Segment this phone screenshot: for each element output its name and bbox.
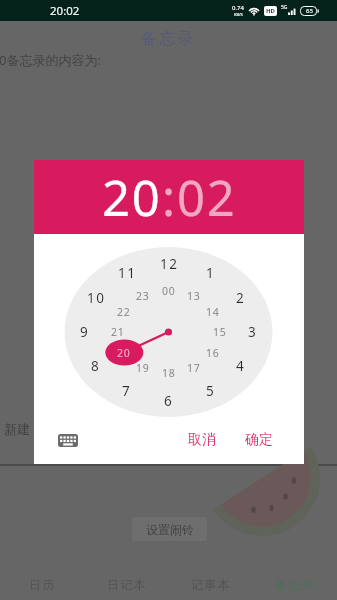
button[interactable]: 13 [180, 286, 208, 306]
staticText: 18 [162, 366, 176, 380]
button[interactable]: 16 [199, 343, 227, 363]
staticText: 5G [281, 4, 288, 11]
staticText: 3 [248, 323, 258, 341]
button[interactable]: 17 [180, 358, 208, 378]
button[interactable]: 1 [197, 263, 225, 283]
staticText: KB/S [234, 12, 243, 17]
staticText: 23 [136, 289, 150, 303]
staticText: 2 [236, 289, 246, 307]
staticText: 4 [236, 357, 246, 375]
staticText: 6 [164, 392, 174, 410]
staticText: 记事本 [191, 577, 232, 592]
button[interactable]: 设置闹铃 [132, 517, 207, 541]
button[interactable]: 记事本 [169, 569, 253, 600]
button[interactable]: 22 [110, 302, 138, 322]
staticText: 13 [187, 289, 201, 303]
button[interactable]: 18 [155, 363, 183, 383]
button[interactable]: 12 [155, 254, 183, 274]
staticText: 1 [206, 264, 216, 282]
staticText: 10 [87, 289, 106, 307]
button[interactable]: 20 [102, 164, 162, 231]
staticText: 5 [206, 382, 216, 400]
staticText: 备忘录 [275, 577, 316, 592]
staticText: HD [266, 7, 275, 15]
button[interactable]: 20 [110, 343, 138, 363]
button[interactable]: 23 [129, 286, 157, 306]
button[interactable]: 10 [82, 288, 110, 308]
button[interactable]: 15 [206, 322, 234, 342]
button[interactable]: 14 [199, 302, 227, 322]
staticText: 日历 [29, 577, 56, 592]
button[interactable]: 8 [82, 356, 110, 376]
staticText: 确定 [245, 431, 273, 449]
staticText: 20:02 [50, 3, 80, 19]
button[interactable]: 4 [227, 356, 255, 376]
button[interactable]: 02 [177, 164, 237, 231]
staticText: 22 [117, 305, 131, 319]
button[interactable]: 备忘录 [253, 569, 337, 600]
button[interactable]: Switch to keyboard input [55, 427, 81, 453]
staticText: 0.74 [232, 4, 244, 12]
staticText: 21 [111, 325, 125, 339]
button[interactable]: 7 [113, 381, 141, 401]
staticText: : [162, 164, 177, 231]
staticText: 15 [213, 325, 227, 339]
button[interactable]: 2 [227, 288, 255, 308]
staticText: 19 [136, 361, 150, 375]
staticText: 备忘录 [141, 29, 197, 49]
staticText: 取消 [188, 431, 216, 449]
button[interactable]: 21 [104, 322, 132, 342]
button[interactable]: 11 [113, 263, 141, 283]
staticText: 新建 [4, 421, 30, 437]
staticText: 11 [118, 264, 137, 282]
staticText: 14 [206, 305, 220, 319]
button[interactable]: 00 [155, 281, 183, 301]
staticText: 8 [91, 357, 101, 375]
button[interactable]: 6 [155, 391, 183, 411]
button[interactable]: 确定 [239, 425, 279, 455]
staticText: 12 [160, 255, 179, 273]
button[interactable]: 5 [197, 381, 225, 401]
button[interactable]: 3 [239, 322, 267, 342]
staticText: 20 [117, 346, 131, 360]
button[interactable]: 9 [71, 322, 99, 342]
staticText: 日记本 [107, 577, 148, 592]
staticText: 65 [306, 7, 313, 15]
button[interactable]: 取消 [182, 425, 222, 455]
staticText: 17 [187, 361, 201, 375]
staticText: 7 [122, 382, 132, 400]
staticText: 00 [162, 284, 176, 298]
button[interactable]: 19 [129, 358, 157, 378]
staticText: 16 [206, 346, 220, 360]
staticText: 0备忘录的内容为: [0, 51, 101, 69]
button[interactable]: 日记本 [85, 569, 169, 600]
staticText: 设置闹铃 [146, 522, 194, 537]
staticText: 9 [80, 323, 90, 341]
